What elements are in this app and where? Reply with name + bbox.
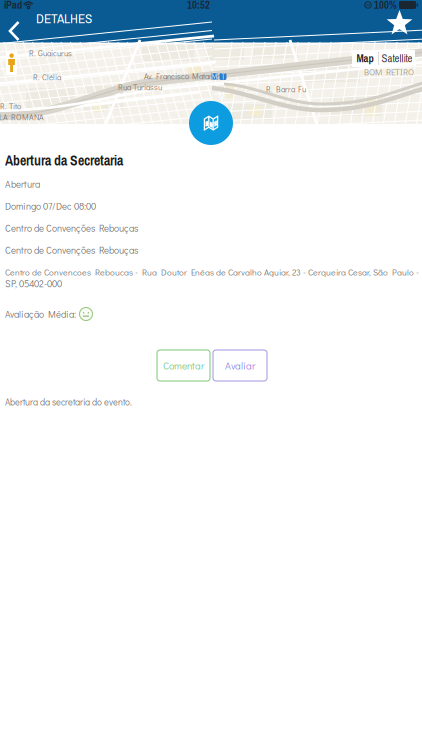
staticText: Avaliação Média: [5,308,76,320]
staticText: Rua Turiassu [118,82,162,92]
button[interactable]: Back [0,0,21,41]
staticText: Satellite [381,51,412,66]
staticText: Avaliar [225,359,255,372]
staticText: iPad [4,0,22,12]
button[interactable]: Avaliar [213,350,267,381]
staticText: Abertura da secretaria do evento. [5,396,132,408]
staticText: 10:52 [187,0,210,12]
staticText: Abertura [5,178,40,190]
button[interactable]: Favourite [386,10,422,36]
staticText: Domingo 07/Dec 08:00 [5,200,96,212]
staticText: Comentar [163,359,204,372]
staticText: Av. Francisco Matarazzo [144,71,226,81]
staticText: Ⓜ [210,71,218,82]
staticText: Centro de Convenções Rebouças [5,222,138,234]
button[interactable]: Open map [189,101,233,145]
staticText: T [221,71,225,82]
staticText: R. Guaicurus [29,48,72,58]
button[interactable]: Satellite [379,50,415,67]
staticText: Abertura da Secretaria [5,151,123,170]
staticText: SP, 05402-000 [5,277,62,290]
staticText: 100% [374,0,397,12]
staticText: BOM RETIRO [364,66,414,77]
staticText: DETALHES [36,9,92,27]
staticText: Map [356,51,373,66]
button[interactable]: Comentar [157,350,210,381]
staticText: Centro de Convenções Rebouças [5,244,138,256]
staticText: VILA ROMANA [0,112,44,122]
staticText: R. Barra Fu [266,84,306,94]
staticText: R. Clélia [33,72,61,82]
staticText: R. Tito [0,101,21,111]
button[interactable]: Map [352,50,378,67]
staticText: Centro de Convencoes Reboucas - Rua Dout… [5,266,421,278]
